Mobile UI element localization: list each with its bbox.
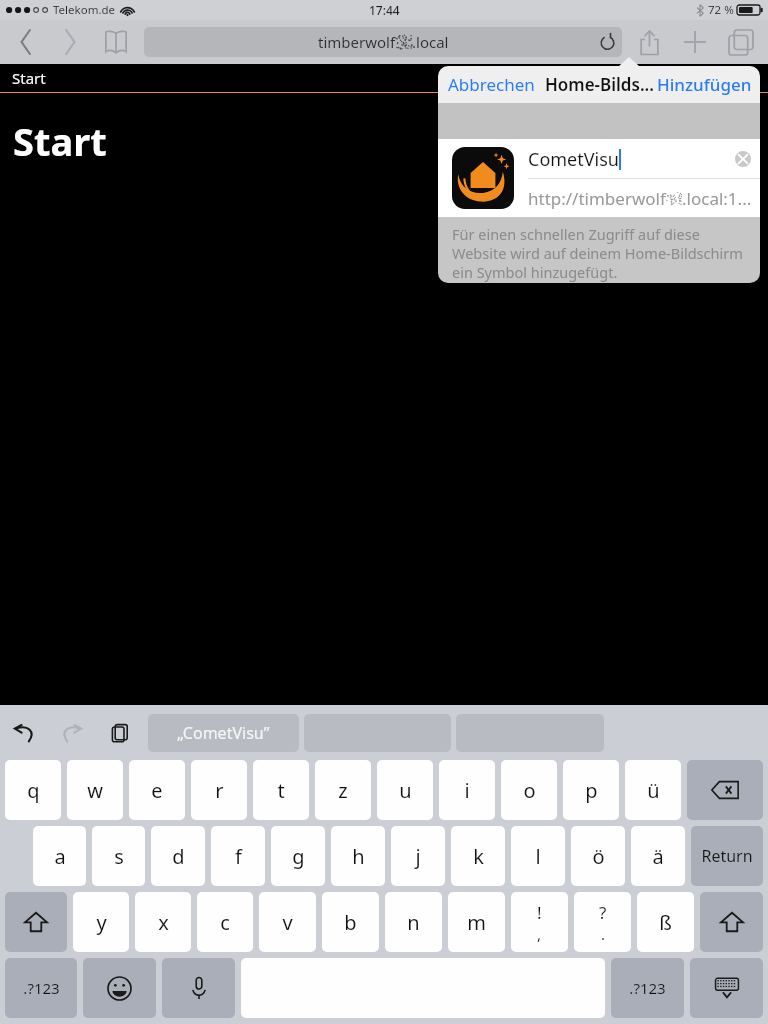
button[interactable]: ß: [637, 892, 694, 952]
staticText: Return: [701, 845, 753, 867]
button[interactable]: v: [259, 892, 316, 952]
button[interactable]: Bookmarks: [92, 20, 140, 64]
staticText: .?123: [23, 978, 60, 998]
button[interactable]: Reload: [592, 27, 622, 57]
button[interactable]: Tabs: [718, 20, 764, 64]
button[interactable]: p: [563, 760, 619, 820]
button[interactable]: m: [448, 892, 505, 952]
button[interactable]: n: [385, 892, 442, 952]
button[interactable]: ö: [571, 826, 625, 886]
button[interactable]: l: [511, 826, 565, 886]
staticText: g: [292, 843, 305, 870]
staticText: h: [352, 843, 365, 870]
button[interactable]: f: [211, 826, 265, 886]
button[interactable]: s: [92, 826, 145, 886]
button[interactable]: h: [331, 826, 385, 886]
button[interactable]: Dictation: [162, 958, 235, 1018]
button[interactable]: Forward: [48, 20, 92, 64]
button[interactable]: Undo: [0, 711, 48, 755]
button[interactable]: t: [253, 760, 309, 820]
staticText: q: [27, 777, 40, 804]
button[interactable]: Share: [626, 20, 672, 64]
button[interactable]: d: [151, 826, 205, 886]
staticText: Start: [13, 115, 107, 167]
button[interactable]: y: [73, 892, 129, 952]
staticText: http://timberwolf: [528, 187, 666, 210]
button[interactable]: !: [511, 892, 568, 952]
button[interactable]: Back: [4, 20, 48, 64]
button[interactable]: Clear text: [730, 146, 756, 172]
button[interactable]: Hide keyboard: [690, 958, 763, 1018]
button[interactable]: j: [391, 826, 445, 886]
staticText: j: [415, 843, 421, 870]
staticText: 17:44: [369, 2, 400, 18]
staticText: .local: [412, 32, 449, 52]
staticText: p: [585, 777, 598, 804]
button[interactable]: „CometVisu”: [148, 714, 299, 752]
staticText: f: [235, 843, 242, 870]
button[interactable]: Hinzufügen: [657, 73, 752, 96]
button[interactable]: c: [197, 892, 253, 952]
button[interactable]: u: [377, 760, 433, 820]
button[interactable]: ä: [631, 826, 685, 886]
button[interactable]: z: [315, 760, 371, 820]
staticText: .: [601, 924, 606, 944]
button[interactable]: Redo: [48, 711, 96, 755]
button[interactable]: x: [135, 892, 191, 952]
staticText: t: [277, 777, 285, 804]
button[interactable]: o: [501, 760, 557, 820]
staticText: .?123: [629, 978, 666, 998]
staticText: ?: [599, 901, 607, 924]
button[interactable]: Shift: [5, 892, 67, 952]
button[interactable]: Return: [691, 826, 763, 886]
button[interactable]: New tab: [672, 20, 718, 64]
staticText: s: [114, 843, 124, 870]
staticText: i: [464, 777, 470, 804]
button[interactable]: q: [5, 760, 61, 820]
button[interactable]: i: [439, 760, 495, 820]
button[interactable]: e: [129, 760, 185, 820]
button[interactable]: b: [322, 892, 379, 952]
staticText: x: [158, 909, 169, 936]
button[interactable]: g: [271, 826, 325, 886]
button[interactable]: k: [451, 826, 505, 886]
staticText: d: [172, 843, 185, 870]
button[interactable]: ?: [574, 892, 631, 952]
staticText: v: [282, 909, 293, 936]
staticText: w: [87, 777, 103, 804]
staticText: ü: [647, 777, 660, 804]
staticText: o: [523, 777, 536, 804]
staticText: r: [215, 777, 224, 804]
button[interactable]: w: [67, 760, 123, 820]
staticText: ß: [659, 909, 672, 936]
staticText: timberwolf: [318, 32, 396, 52]
button[interactable]: .?123: [611, 958, 684, 1018]
button[interactable]: Abbrechen: [448, 73, 535, 96]
staticText: k: [473, 843, 484, 870]
staticText: Start: [12, 68, 46, 88]
staticText: u: [399, 777, 412, 804]
button[interactable]: ü: [625, 760, 681, 820]
button[interactable]: r: [191, 760, 247, 820]
staticText: „CometVisu”: [177, 722, 270, 744]
button[interactable]: Backspace: [687, 760, 763, 820]
staticText: y: [96, 909, 107, 936]
staticText: ,: [537, 924, 542, 944]
button[interactable]: Paste: [96, 711, 144, 755]
staticText: .local:1...: [682, 187, 752, 210]
button[interactable]: Emoji: [83, 958, 156, 1018]
staticText: Für einen schnellen Zugriff auf diese We…: [452, 224, 746, 282]
staticText: Telekom.de: [53, 2, 116, 18]
button[interactable]: a: [33, 826, 86, 886]
button[interactable]: timberwolf: [144, 27, 622, 57]
staticText: a: [54, 843, 66, 870]
button[interactable]: .?123: [5, 958, 77, 1018]
staticText: Home-Bilds...: [545, 73, 654, 96]
staticText: n: [407, 909, 420, 936]
staticText: CometVisu: [528, 147, 619, 172]
staticText: e: [151, 777, 163, 804]
button[interactable]: Shift: [700, 892, 763, 952]
